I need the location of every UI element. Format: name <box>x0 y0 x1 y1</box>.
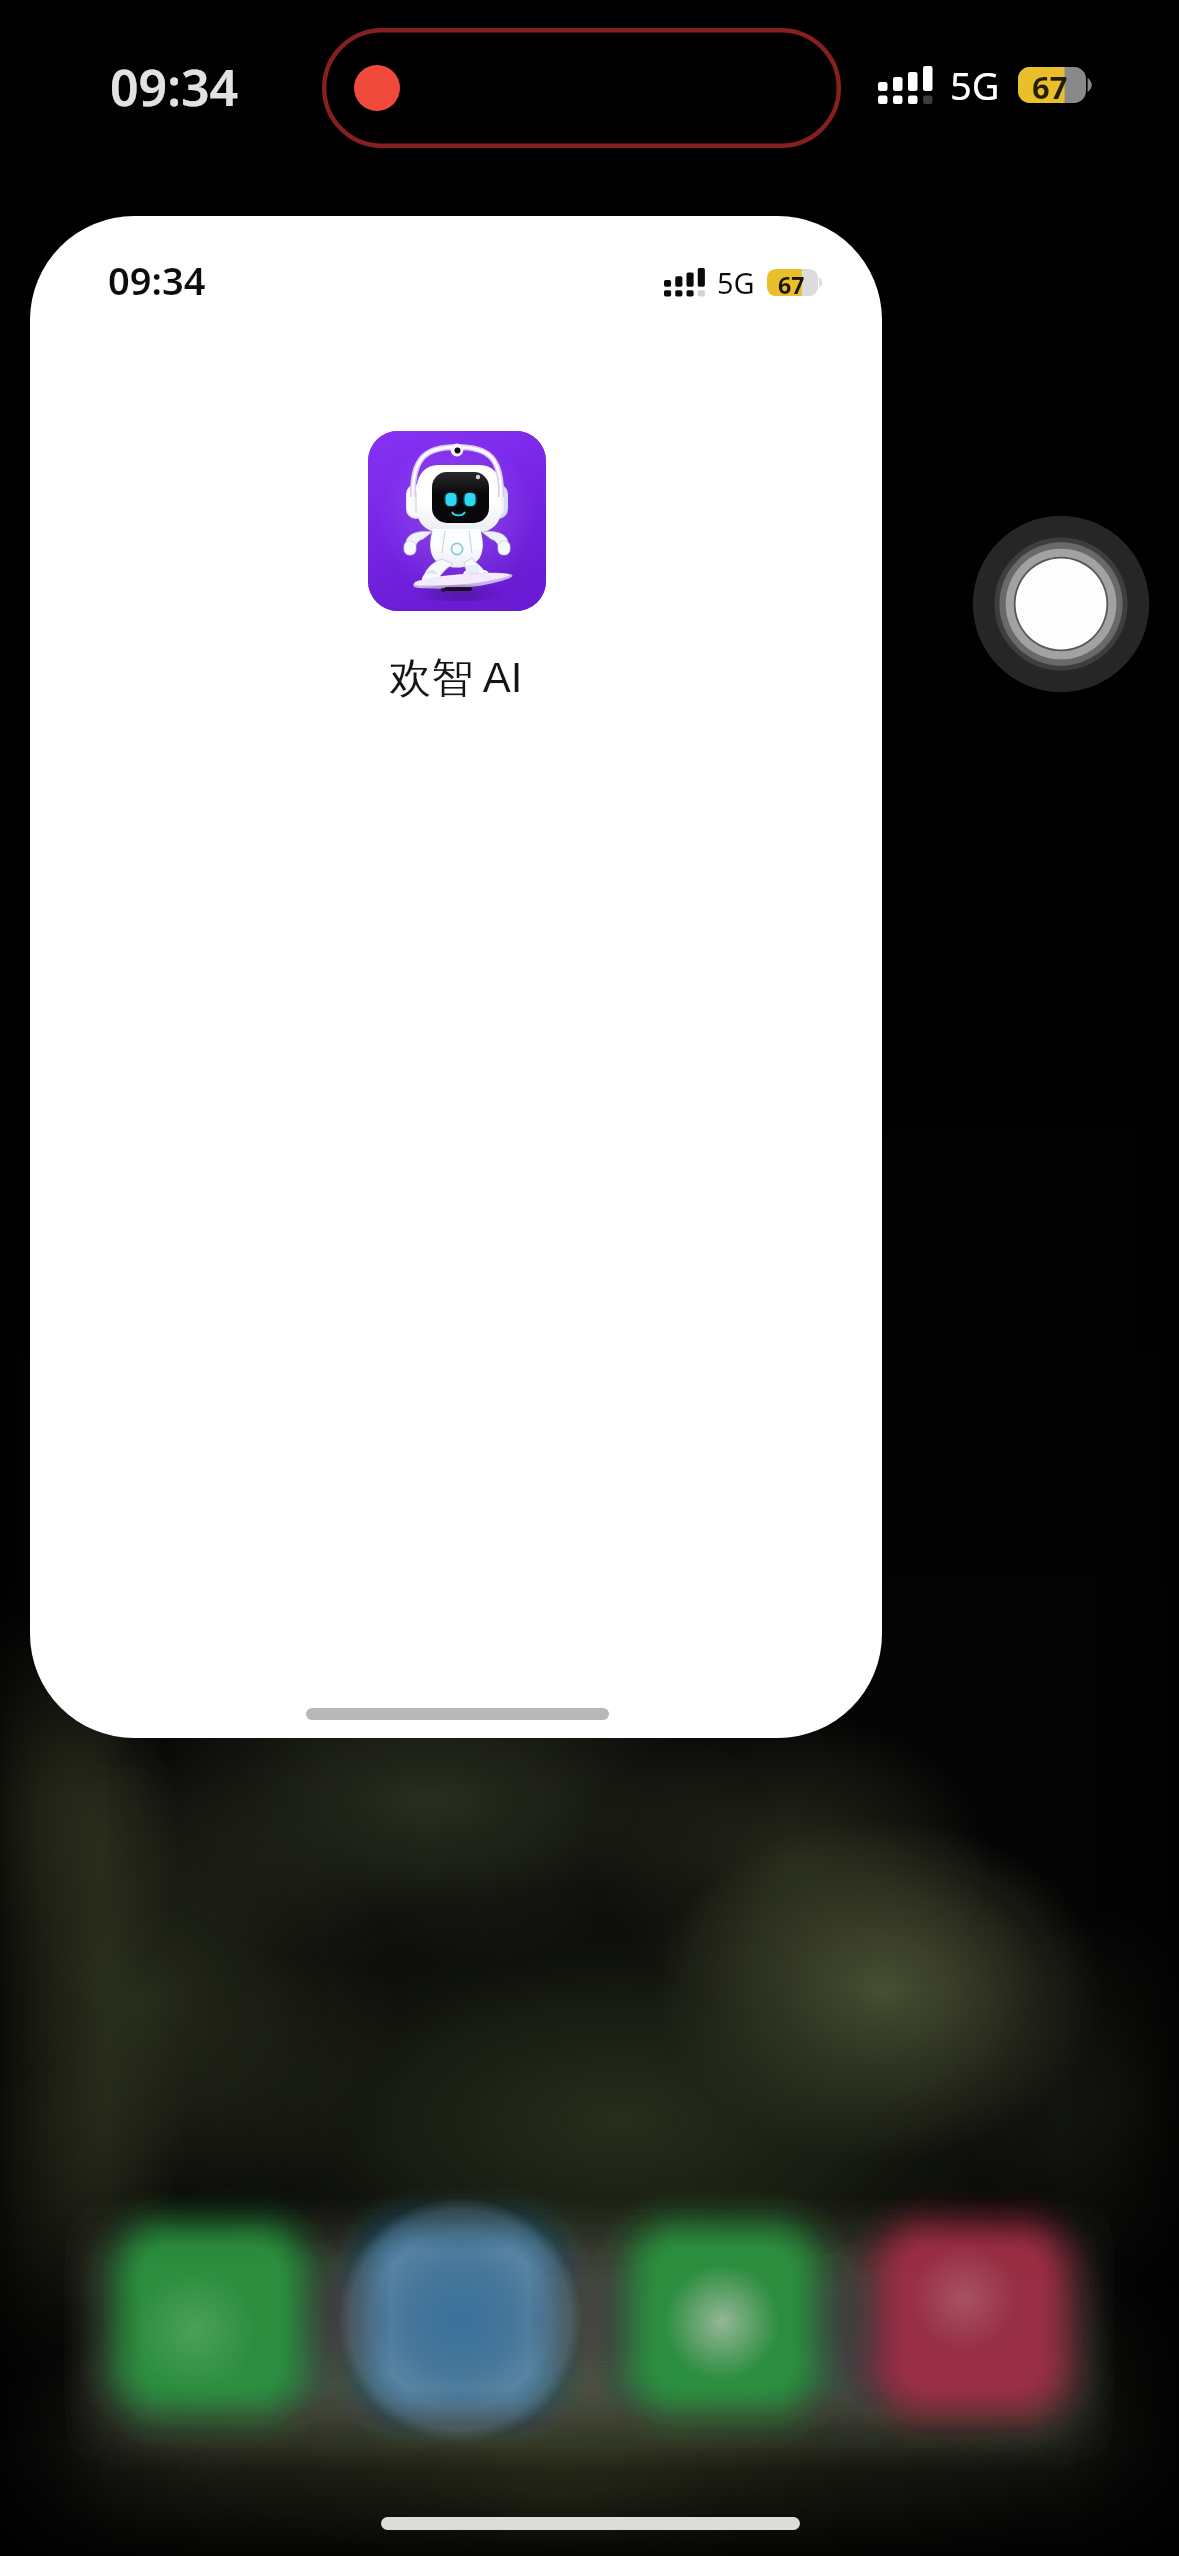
button[interactable]: Messages <box>629 2223 819 2413</box>
staticText: 67 <box>778 269 805 296</box>
button[interactable]: Safari <box>365 2223 555 2413</box>
staticText: 5G <box>717 263 755 302</box>
button[interactable]: Music <box>877 2223 1067 2413</box>
staticText: 5G <box>950 59 1000 111</box>
button[interactable]: 09:34 <box>30 216 882 1738</box>
button[interactable]: Phone <box>116 2223 306 2413</box>
staticText: 欢智 AI <box>30 652 882 705</box>
button[interactable]: 欢智 AI <box>368 431 546 611</box>
staticText: 09:34 <box>108 254 206 306</box>
staticText: 67 <box>1032 66 1068 102</box>
button[interactable]: AssistiveTouch <box>971 514 1151 694</box>
staticText: 09:34 <box>110 53 239 121</box>
